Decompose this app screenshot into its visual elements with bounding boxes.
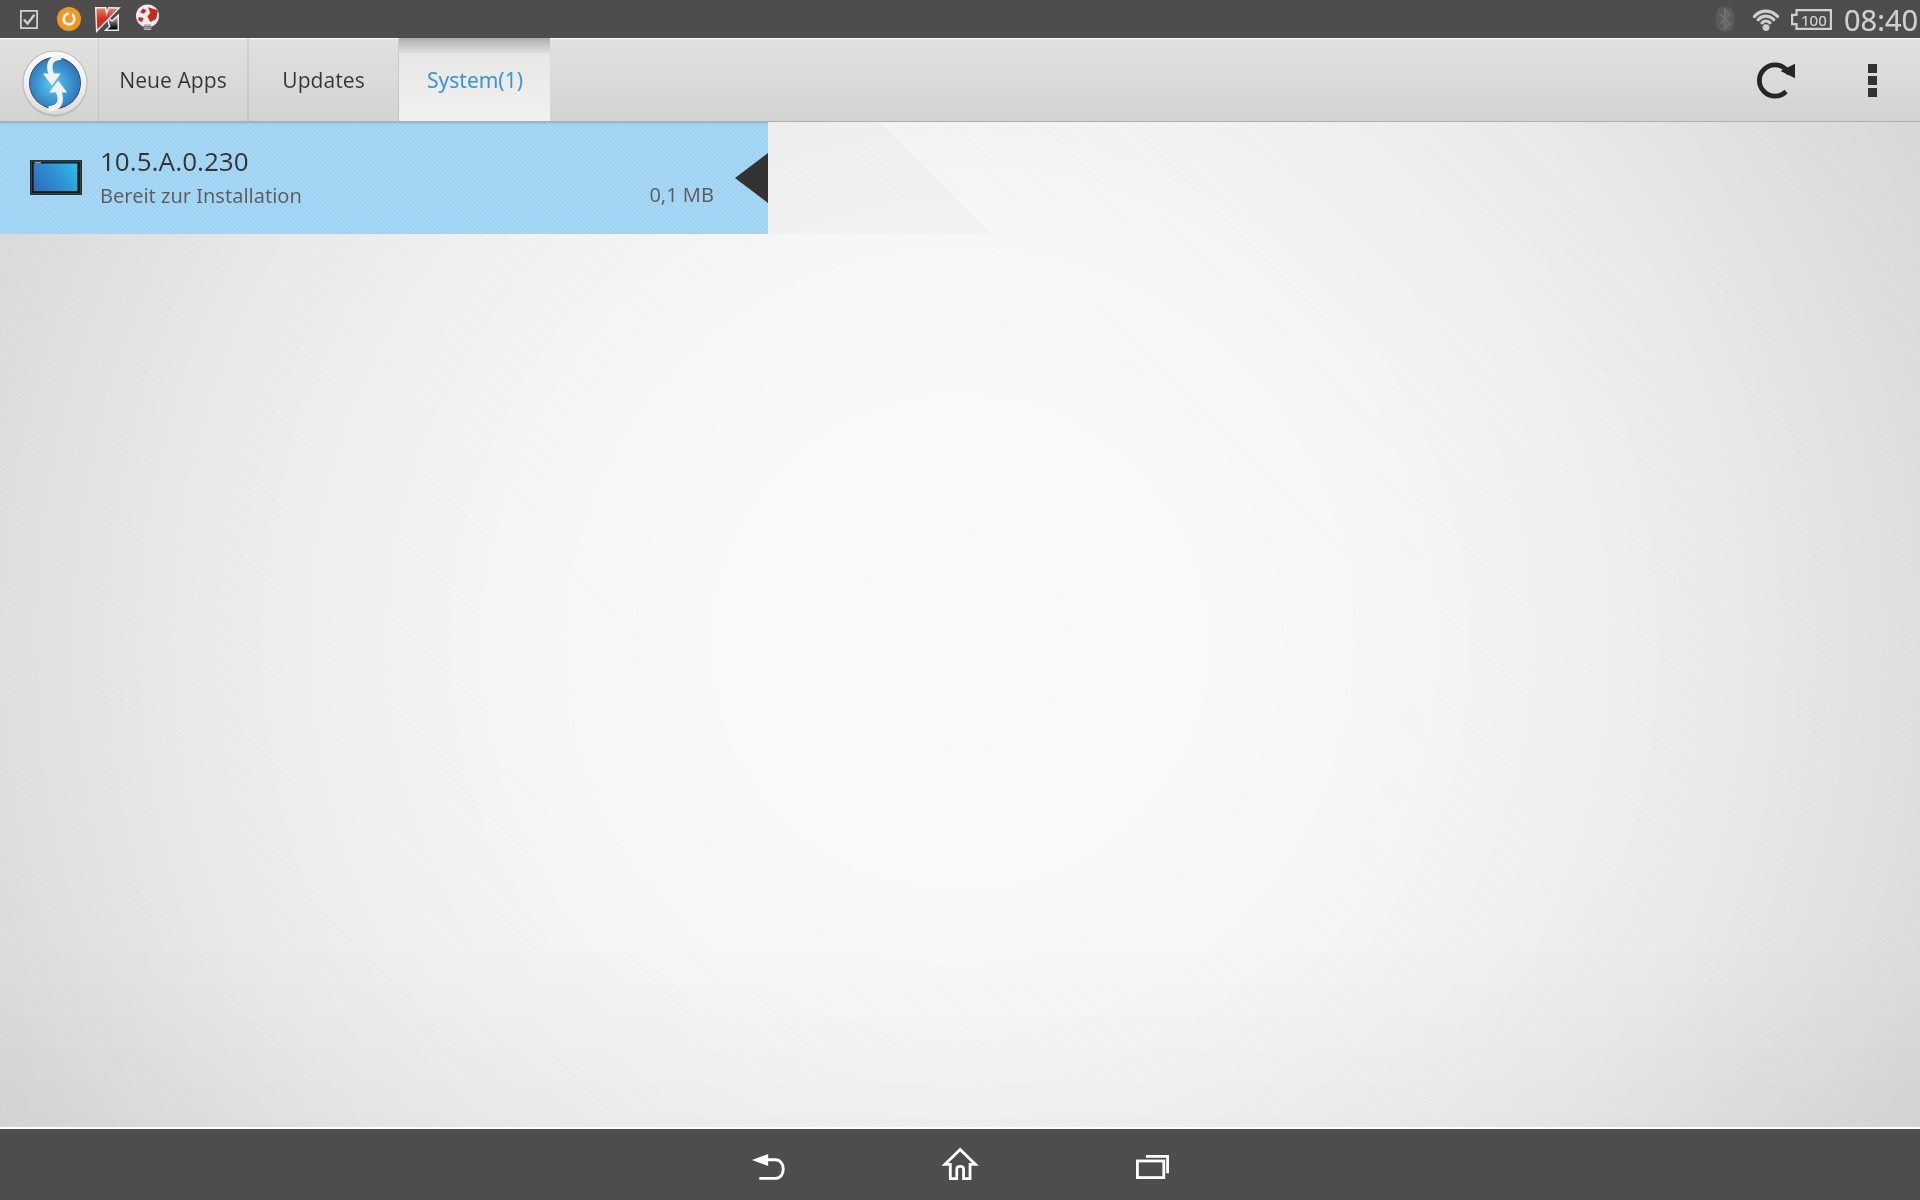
button[interactable]: Back (672, 1129, 864, 1200)
button[interactable]: Refresh (1729, 38, 1824, 122)
staticText: System(1) (427, 66, 523, 95)
staticText: Bereit zur Installation (100, 182, 302, 209)
staticText: 0,1 MB (649, 181, 714, 208)
staticText: Neue Apps (119, 66, 227, 95)
button[interactable]: 10.5.A.0.230 (0, 122, 768, 234)
button[interactable]: Home (864, 1129, 1056, 1200)
button[interactable]: More options (1824, 38, 1920, 122)
button[interactable]: App logo (0, 38, 98, 122)
button[interactable]: Updates (248, 38, 399, 122)
staticText: Updates (282, 66, 365, 95)
button[interactable]: Neue Apps (98, 38, 248, 122)
staticText: 10.5.A.0.230 (100, 143, 249, 178)
staticText: 100 (1801, 10, 1827, 30)
button[interactable]: System(1) (399, 38, 550, 122)
staticText: 08:40 (1844, 0, 1919, 38)
button[interactable]: Recent apps (1056, 1129, 1248, 1200)
